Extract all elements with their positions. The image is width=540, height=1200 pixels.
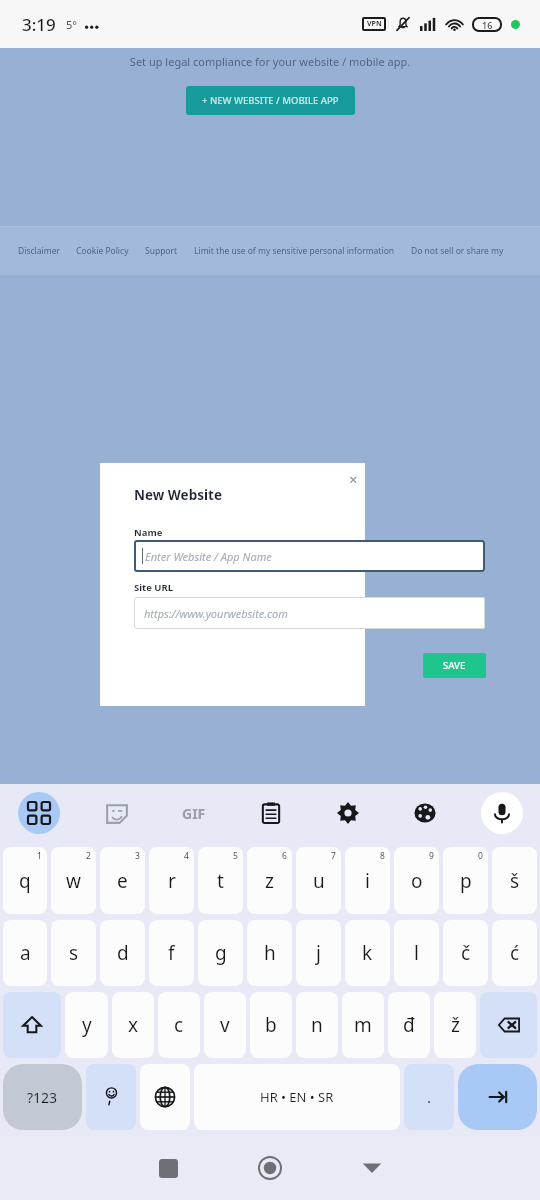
button[interactable]: Clipboard	[232, 784, 309, 842]
button[interactable]: š	[492, 847, 537, 914]
button[interactable]: g	[198, 920, 243, 986]
button[interactable]: h	[247, 920, 292, 986]
button[interactable]: + NEW WEBSITE / MOBILE APP	[186, 86, 355, 115]
button[interactable]: https://www.yourwebsite.com	[134, 597, 485, 629]
staticText: p	[460, 868, 472, 894]
button[interactable]: Apps	[0, 784, 78, 842]
staticText: e	[117, 868, 128, 894]
button[interactable]: f	[149, 920, 194, 986]
button[interactable]: k	[345, 920, 390, 986]
staticText: 3:19	[22, 13, 56, 36]
button[interactable]: Support	[137, 245, 186, 257]
staticText: x	[128, 1012, 139, 1038]
staticText: m	[354, 1012, 372, 1038]
staticText: z	[265, 868, 274, 894]
button[interactable]: z	[247, 847, 292, 914]
button[interactable]: ž	[434, 992, 476, 1058]
button[interactable]: Enter Website / App Name	[134, 540, 485, 572]
button[interactable]: Settings	[309, 784, 386, 842]
staticText: Cookie Policy	[76, 245, 129, 257]
button[interactable]: č	[443, 920, 488, 986]
button[interactable]: c	[158, 992, 200, 1058]
staticText: š	[510, 868, 520, 894]
staticText: s	[69, 940, 79, 966]
button[interactable]: Shift	[3, 992, 61, 1058]
button[interactable]: o	[394, 847, 439, 914]
button[interactable]: đ	[388, 992, 430, 1058]
button[interactable]: Disclaimer	[10, 245, 68, 257]
staticText: 5	[233, 850, 238, 862]
button[interactable]: SAVE	[423, 653, 486, 678]
staticText: 16	[482, 19, 493, 31]
button[interactable]: a	[3, 920, 47, 986]
staticText: 6	[282, 850, 287, 862]
staticText: đ	[403, 1012, 415, 1038]
staticText: VPN	[367, 19, 382, 29]
staticText: a	[20, 940, 31, 966]
button[interactable]: t	[198, 847, 243, 914]
staticText: 2	[86, 850, 91, 862]
button[interactable]: Hide keyboard	[321, 1136, 423, 1200]
button[interactable]: e	[100, 847, 145, 914]
staticText: 4	[184, 850, 189, 862]
button[interactable]: Do not sell or share my personal informa…	[403, 245, 540, 257]
button[interactable]: p	[443, 847, 488, 914]
button[interactable]: q	[3, 847, 47, 914]
staticText: 0	[478, 850, 483, 862]
button[interactable]: Backspace	[480, 992, 537, 1058]
button[interactable]: r	[149, 847, 194, 914]
button[interactable]: Limit the use of my sensitive personal i…	[186, 245, 403, 257]
button[interactable]: l	[394, 920, 439, 986]
staticText: Set up legal compliance for your website…	[0, 54, 540, 69]
button[interactable]: d	[100, 920, 145, 986]
button[interactable]: Close	[340, 466, 366, 492]
button[interactable]: x	[112, 992, 154, 1058]
button[interactable]: v	[204, 992, 246, 1058]
button[interactable]: j	[296, 920, 341, 986]
button[interactable]: Change language	[140, 1064, 190, 1130]
staticText: Disclaimer	[18, 245, 60, 257]
button[interactable]: Emoji	[86, 1064, 136, 1130]
button[interactable]: w	[51, 847, 96, 914]
staticText: u	[313, 868, 325, 894]
staticText: Enter Website / App Name	[145, 549, 272, 564]
staticText: ?123	[27, 1088, 58, 1107]
staticText: ž	[451, 1012, 460, 1038]
button[interactable]: b	[250, 992, 292, 1058]
button[interactable]: ?123	[3, 1064, 82, 1130]
button[interactable]: Next	[458, 1064, 537, 1130]
staticText: h	[264, 940, 276, 966]
staticText: d	[117, 940, 129, 966]
button[interactable]: Theme	[386, 784, 463, 842]
button[interactable]: Stickers	[78, 784, 155, 842]
button[interactable]: Home	[219, 1136, 321, 1200]
button[interactable]: Voice input	[463, 784, 540, 842]
staticText: GIF	[182, 804, 206, 823]
button[interactable]: n	[296, 992, 338, 1058]
button[interactable]: u	[296, 847, 341, 914]
staticText: j	[316, 940, 321, 966]
staticText: Support	[145, 245, 178, 257]
button[interactable]: s	[51, 920, 96, 986]
staticText: ć	[510, 940, 520, 966]
staticText: l	[414, 940, 419, 966]
staticText: o	[411, 868, 423, 894]
button[interactable]: HR • EN • SR	[194, 1064, 400, 1130]
staticText: Limit the use of my sensitive personal i…	[194, 245, 395, 257]
button[interactable]: Recents	[117, 1136, 219, 1200]
staticText: ×	[349, 469, 358, 489]
button[interactable]: y	[65, 992, 108, 1058]
staticText: 8	[380, 850, 385, 862]
staticText: k	[362, 940, 373, 966]
staticText: + NEW WEBSITE / MOBILE APP	[202, 94, 339, 107]
button[interactable]: Cookie Policy	[68, 245, 137, 257]
button[interactable]: GIF	[155, 784, 232, 842]
button[interactable]: i	[345, 847, 390, 914]
staticText: https://www.yourwebsite.com	[144, 606, 288, 621]
staticText: HR • EN • SR	[260, 1088, 334, 1106]
button[interactable]: m	[342, 992, 384, 1058]
staticText: New Website	[134, 486, 222, 504]
staticText: g	[215, 940, 227, 966]
button[interactable]: .	[404, 1064, 454, 1130]
button[interactable]: ć	[492, 920, 537, 986]
